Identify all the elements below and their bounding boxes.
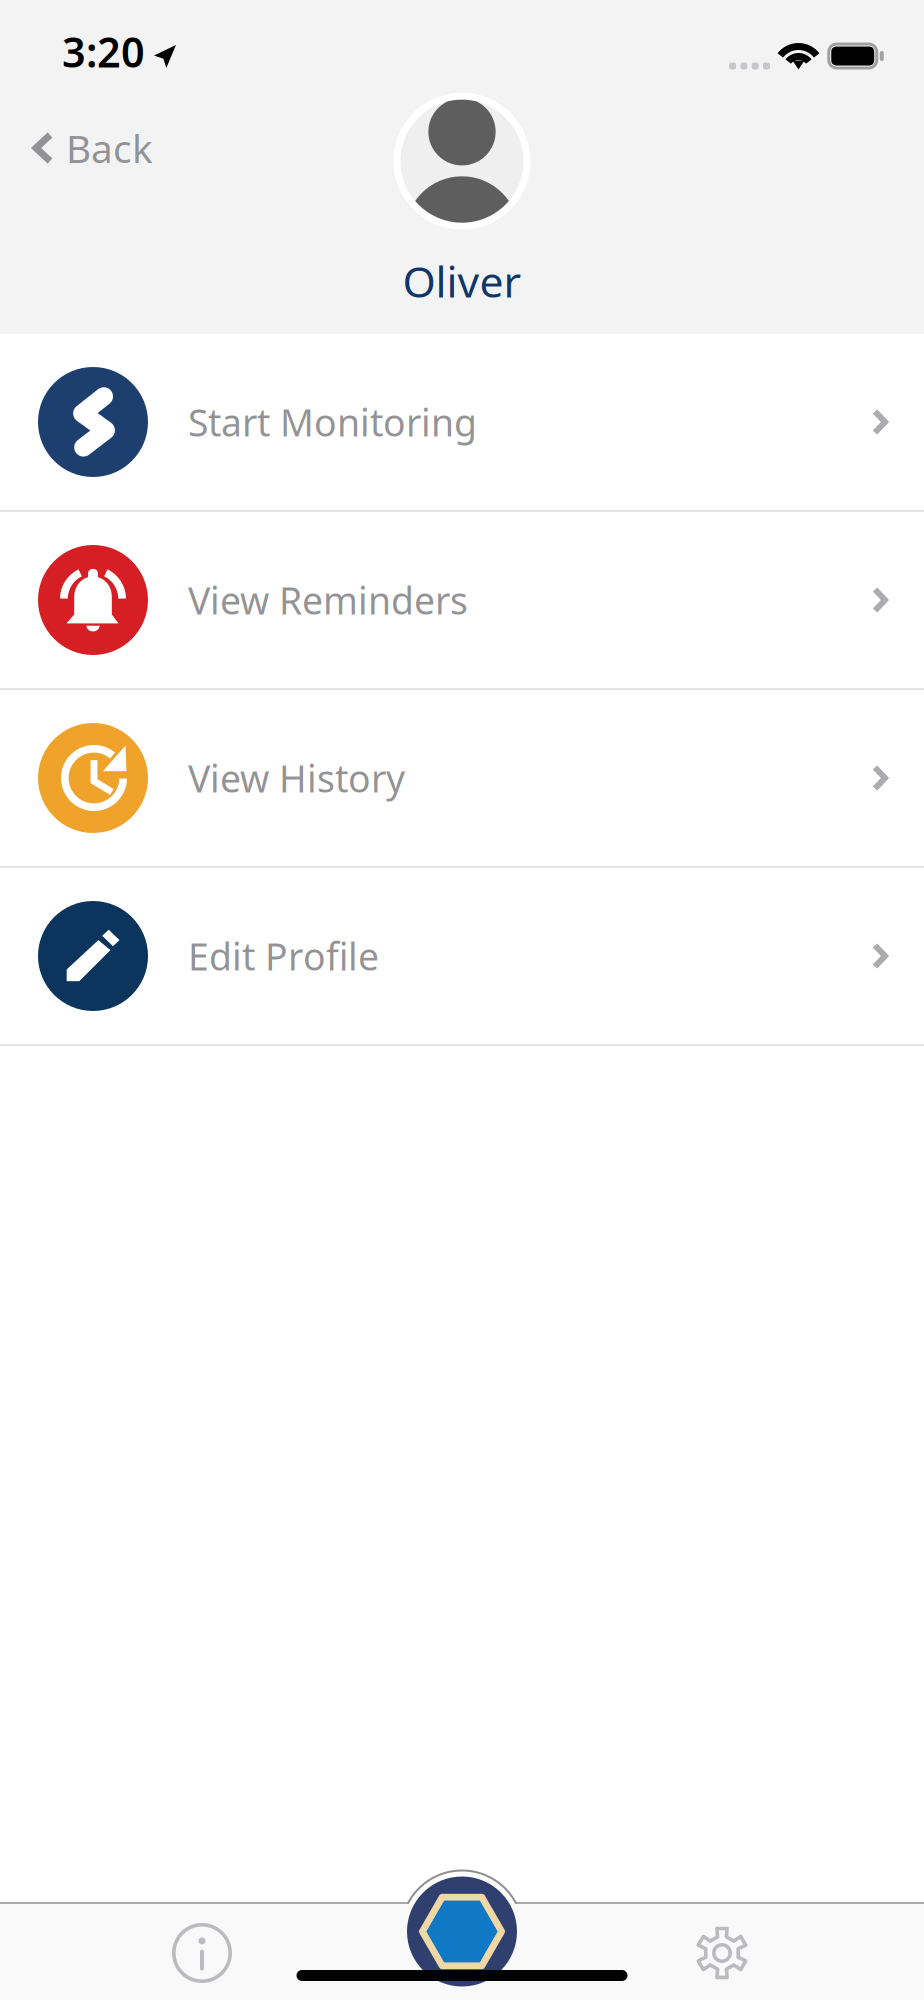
button[interactable]: Edit Profile	[0, 868, 924, 1046]
staticText: Edit Profile	[188, 931, 379, 981]
button[interactable]: View History	[0, 690, 924, 868]
button[interactable]: Scan	[406, 1876, 517, 1987]
staticText: View Reminders	[188, 575, 468, 625]
staticText: Back	[66, 122, 153, 174]
staticText: Oliver	[402, 253, 521, 309]
staticText: 3:20	[62, 24, 145, 79]
button[interactable]: Back	[0, 110, 177, 186]
button[interactable]: Start Monitoring	[0, 334, 924, 512]
staticText: Start Monitoring	[188, 397, 477, 447]
staticText: View History	[188, 753, 405, 803]
button[interactable]: Info	[136, 1923, 268, 1983]
button[interactable]: View Reminders	[0, 512, 924, 690]
button[interactable]: Settings	[656, 1923, 788, 1983]
